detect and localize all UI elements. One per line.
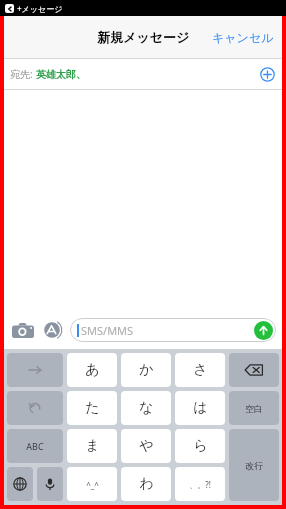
staticText: ^_^ xyxy=(86,479,99,490)
button[interactable]: 空白 xyxy=(229,391,279,425)
button[interactable]: た xyxy=(67,391,117,425)
button[interactable]: 、。?! xyxy=(175,467,225,501)
button[interactable]: Change keyboard xyxy=(7,467,33,501)
button[interactable]: App Store xyxy=(40,318,64,342)
staticText: は xyxy=(193,399,208,417)
other: Change keyboard xyxy=(13,477,27,491)
button[interactable]: Send xyxy=(254,321,273,340)
other: Backspace xyxy=(244,363,264,377)
button[interactable]: Voice input xyxy=(37,467,63,501)
staticText: 新規メッセージ xyxy=(97,29,190,45)
button[interactable]: SMS/MMS xyxy=(70,318,276,342)
other: Voice input xyxy=(43,477,57,491)
button[interactable]: あ xyxy=(67,353,117,387)
button[interactable]: わ xyxy=(121,467,171,501)
button[interactable]: ^_^ xyxy=(67,467,117,501)
staticText: さ xyxy=(193,361,208,379)
other: Undo xyxy=(28,401,42,415)
button[interactable]: ABC xyxy=(7,429,63,463)
button[interactable]: Camera xyxy=(10,317,36,343)
button[interactable]: Add recipient xyxy=(258,65,276,83)
staticText: 、。?! xyxy=(189,479,211,490)
button[interactable]: や xyxy=(121,429,171,463)
staticText: SMS/MMS xyxy=(81,323,134,338)
staticText: キャンセル xyxy=(212,30,274,45)
button[interactable]: は xyxy=(175,391,225,425)
staticText: 空白 xyxy=(245,403,263,414)
button[interactable]: な xyxy=(121,391,171,425)
staticText: 英雄太郎、 xyxy=(36,68,86,81)
staticText: わ xyxy=(139,475,154,493)
staticText: +メッセージ xyxy=(17,3,63,14)
button[interactable]: キャンセル xyxy=(204,24,282,51)
staticText: ABC xyxy=(26,440,44,452)
staticText: な xyxy=(139,399,154,417)
staticText: ま xyxy=(85,437,100,455)
staticText: 宛先: xyxy=(10,67,36,81)
button[interactable]: ら xyxy=(175,429,225,463)
staticText: や xyxy=(139,437,154,455)
button[interactable]: Undo xyxy=(7,391,63,425)
button[interactable]: さ xyxy=(175,353,225,387)
button[interactable]: ま xyxy=(67,429,117,463)
staticText: 改行 xyxy=(245,460,263,471)
button[interactable]: Back xyxy=(5,4,14,13)
staticText: あ xyxy=(85,361,100,379)
button[interactable]: か xyxy=(121,353,171,387)
staticText: た xyxy=(85,399,100,417)
button[interactable]: Backspace xyxy=(229,353,279,387)
staticText: か xyxy=(139,361,154,379)
button[interactable]: Next candidate xyxy=(7,353,63,387)
staticText: ら xyxy=(193,437,208,455)
other: Next candidate xyxy=(27,365,43,375)
button[interactable]: 改行 xyxy=(229,429,279,501)
